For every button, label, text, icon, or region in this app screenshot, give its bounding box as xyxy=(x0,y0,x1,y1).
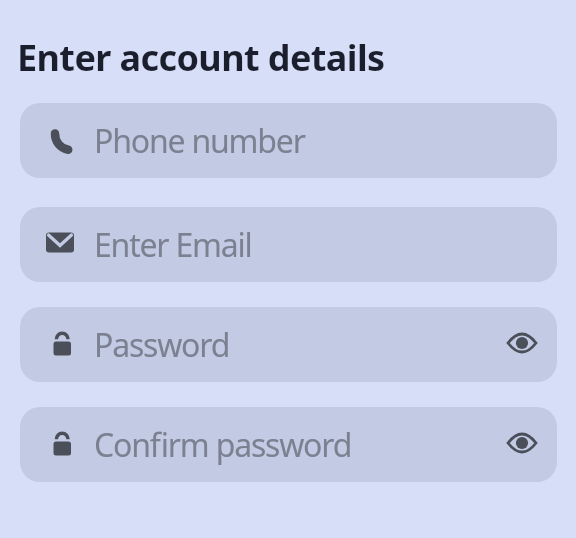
staticText: Password xyxy=(94,323,230,367)
staticText: Phone number xyxy=(94,119,305,163)
button[interactable]: Confirm password xyxy=(20,407,557,482)
button[interactable]: Enter Email xyxy=(20,207,557,282)
staticText: Enter account details xyxy=(17,33,385,82)
staticText: Enter Email xyxy=(94,223,252,267)
staticText: Confirm password xyxy=(94,423,352,467)
button[interactable]: Phone number xyxy=(20,103,557,178)
button[interactable]: Password xyxy=(20,307,557,382)
